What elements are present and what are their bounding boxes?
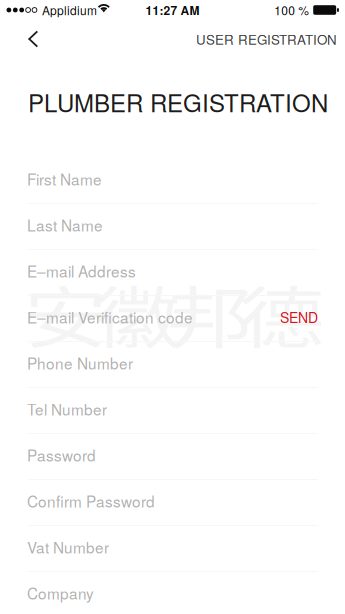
staticText: E–mail Address xyxy=(27,260,136,282)
staticText: First Name xyxy=(27,168,102,190)
button[interactable]: Confirm Password xyxy=(0,480,345,526)
button[interactable]: E–mail Address xyxy=(0,250,345,296)
staticText: Vat Number xyxy=(27,536,109,558)
button[interactable]: Last Name xyxy=(0,204,345,250)
button[interactable]: Phone Number xyxy=(0,342,345,388)
button[interactable]: USER REGISTRATION xyxy=(196,20,345,58)
staticText: 100 % xyxy=(274,1,309,19)
staticText: Password xyxy=(27,444,96,466)
staticText: Tel Number xyxy=(27,398,107,420)
button[interactable]: Tel Number xyxy=(0,388,345,434)
staticText: USER REGISTRATION xyxy=(196,29,337,49)
staticText: 邦 xyxy=(167,265,255,392)
button[interactable]: Vat Number xyxy=(0,526,345,572)
staticText: Last Name xyxy=(27,214,103,236)
staticText: Phone Number xyxy=(27,352,133,374)
staticText: 11:27 AM xyxy=(145,1,199,19)
staticText: E–mail Verification code xyxy=(27,306,193,328)
button[interactable]: Back xyxy=(0,20,74,58)
button[interactable]: Password xyxy=(0,434,345,480)
staticText: Confirm Password xyxy=(27,490,155,512)
staticText: 德 xyxy=(239,265,327,392)
button[interactable]: E–mail Verification code xyxy=(0,296,345,342)
staticText: SEND xyxy=(280,307,318,327)
staticText: 徽 xyxy=(95,265,183,392)
staticText: PLUMBER REGISTRATION xyxy=(28,85,328,119)
staticText: 安 xyxy=(23,265,111,392)
button[interactable]: First Name xyxy=(0,158,345,204)
staticText: Applidium xyxy=(42,1,97,19)
staticText: Company xyxy=(27,582,94,604)
button[interactable]: Company xyxy=(0,572,345,614)
